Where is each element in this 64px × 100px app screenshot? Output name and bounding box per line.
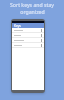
button[interactable]: Row menu	[40, 44, 43, 47]
staticText: Sort keys and stay	[10, 1, 54, 8]
button[interactable]: Row menu	[40, 29, 43, 32]
button[interactable]: Row menu	[12, 33, 44, 37]
button[interactable]: Row menu	[12, 43, 44, 47]
button[interactable]: Row menu	[40, 34, 43, 37]
staticText: Keys	[14, 24, 21, 28]
staticText: organized	[20, 8, 45, 15]
button[interactable]: Row menu	[12, 38, 44, 42]
button[interactable]: Row menu	[12, 28, 44, 32]
button[interactable]: Row menu	[40, 39, 43, 42]
